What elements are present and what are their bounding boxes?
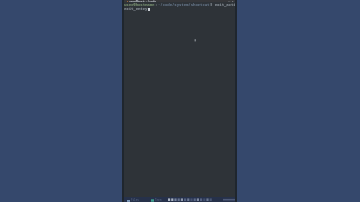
staticText: Term bbox=[155, 198, 162, 202]
button[interactable]: App icon bbox=[122, 0, 237, 202]
staticText: ~/code/system/shortcut bbox=[158, 2, 210, 8]
staticText: exit_entry bbox=[124, 6, 148, 12]
button[interactable]: Files bbox=[127, 198, 139, 202]
button[interactable]: App icon bbox=[124, 0, 235, 2]
button[interactable]: Terminal bbox=[151, 198, 162, 202]
staticText: : bbox=[155, 2, 158, 8]
staticText: _ □ × bbox=[225, 0, 234, 2]
button[interactable]: Window controls bbox=[225, 0, 234, 2]
staticText: user@hostname bbox=[124, 2, 155, 8]
staticText: user@host:~/code bbox=[129, 0, 156, 2]
button[interactable]: System tray bbox=[124, 197, 235, 202]
staticText: $ exit_action bbox=[210, 2, 235, 8]
staticText: Files bbox=[131, 198, 139, 202]
